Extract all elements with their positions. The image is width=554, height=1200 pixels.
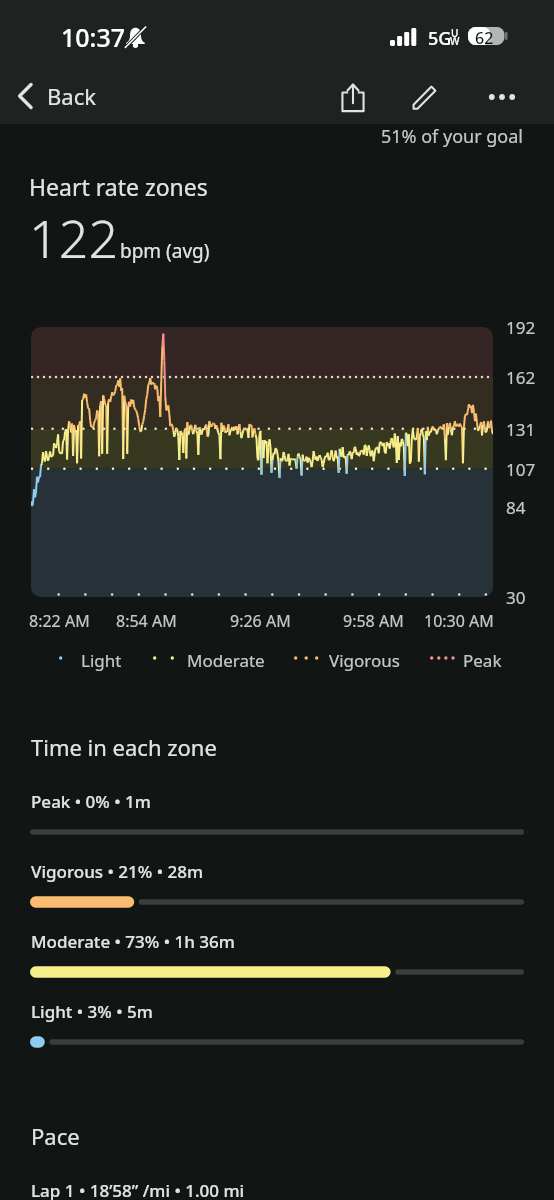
staticText: Peak	[463, 649, 502, 672]
staticText: 107	[506, 458, 536, 481]
staticText: Heart rate zones	[29, 171, 208, 202]
button[interactable]: Light	[55, 645, 96, 671]
button[interactable]: Moderate	[149, 645, 227, 671]
button[interactable]: Edit	[401, 73, 449, 121]
staticText: Lap 1 • 18’58” /mi • 1.00 mi	[31, 1179, 245, 1200]
staticText: Light	[81, 649, 122, 672]
staticText: 162	[506, 366, 536, 389]
staticText: 8:54 AM	[116, 610, 177, 632]
staticText: Moderate • 73% • 1h 36m	[31, 930, 235, 953]
staticText: Light • 3% • 5m	[31, 1000, 153, 1023]
button[interactable]	[30, 963, 524, 981]
staticText: 84	[506, 496, 526, 519]
staticText: Pace	[31, 1121, 80, 1151]
staticText: Vigorous • 21% • 28m	[31, 860, 204, 883]
button[interactable]	[30, 1033, 524, 1051]
button[interactable]: Vigorous	[290, 645, 361, 671]
staticText: Peak • 0% • 1m	[31, 790, 151, 813]
staticText: 131	[506, 418, 536, 441]
staticText: 30	[506, 586, 526, 609]
staticText: 122	[29, 202, 119, 273]
button[interactable]	[30, 893, 524, 911]
staticText: 192	[506, 316, 536, 339]
staticText: 51% of your goal	[381, 124, 524, 149]
button[interactable]: Share	[329, 73, 377, 121]
button[interactable]: More options	[478, 73, 526, 121]
staticText: 5G	[428, 26, 452, 51]
other: Notifications muted	[125, 26, 146, 48]
button[interactable]: Back	[7, 72, 106, 120]
staticText: 62	[475, 27, 494, 49]
staticText: Back	[47, 81, 96, 111]
staticText: 10:30 AM	[424, 610, 494, 632]
staticText: Time in each zone	[31, 732, 217, 762]
staticText: 9:58 AM	[343, 610, 404, 632]
staticText: W	[450, 34, 460, 48]
button[interactable]	[30, 823, 524, 841]
staticText: bpm (avg)	[120, 238, 210, 264]
staticText: 9:26 AM	[230, 610, 291, 632]
button[interactable]: Peak	[426, 645, 465, 671]
staticText: Vigorous	[329, 649, 400, 672]
staticText: 8:22 AM	[29, 610, 90, 632]
staticText: Moderate	[187, 649, 265, 672]
staticText: U	[451, 26, 459, 40]
staticText: 10:37	[61, 20, 126, 54]
